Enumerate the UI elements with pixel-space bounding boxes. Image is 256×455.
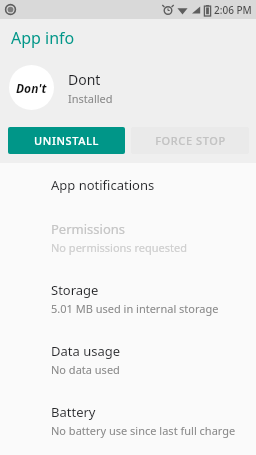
staticText: No data used: [51, 362, 120, 377]
staticText: Storage: [51, 281, 99, 299]
button[interactable]: App notifications: [0, 163, 256, 207]
staticText: UNINSTALL: [34, 133, 99, 148]
button[interactable]: Permissions: [0, 207, 256, 268]
staticText: Data usage: [51, 342, 121, 360]
button[interactable]: FORCE STOP: [131, 127, 249, 154]
staticText: 5.01 MB used in internal storage: [51, 301, 219, 316]
staticText: App info: [11, 27, 75, 49]
staticText: FORCE STOP: [155, 133, 226, 148]
button[interactable]: Battery: [0, 390, 256, 451]
button[interactable]: Data usage: [0, 329, 256, 390]
staticText: Installed: [68, 91, 113, 106]
button[interactable]: Don't: [0, 56, 256, 119]
staticText: Battery: [51, 403, 96, 421]
button[interactable]: Storage: [0, 268, 256, 329]
staticText: No permissions requested: [51, 240, 187, 255]
staticText: Don't: [16, 80, 47, 96]
staticText: App notifications: [51, 176, 155, 194]
staticText: Dont: [68, 70, 101, 89]
staticText: Permissions: [51, 220, 126, 238]
staticText: 2:06 PM: [214, 3, 252, 17]
staticText: No battery use since last full charge: [51, 423, 236, 438]
button[interactable]: UNINSTALL: [8, 127, 125, 154]
